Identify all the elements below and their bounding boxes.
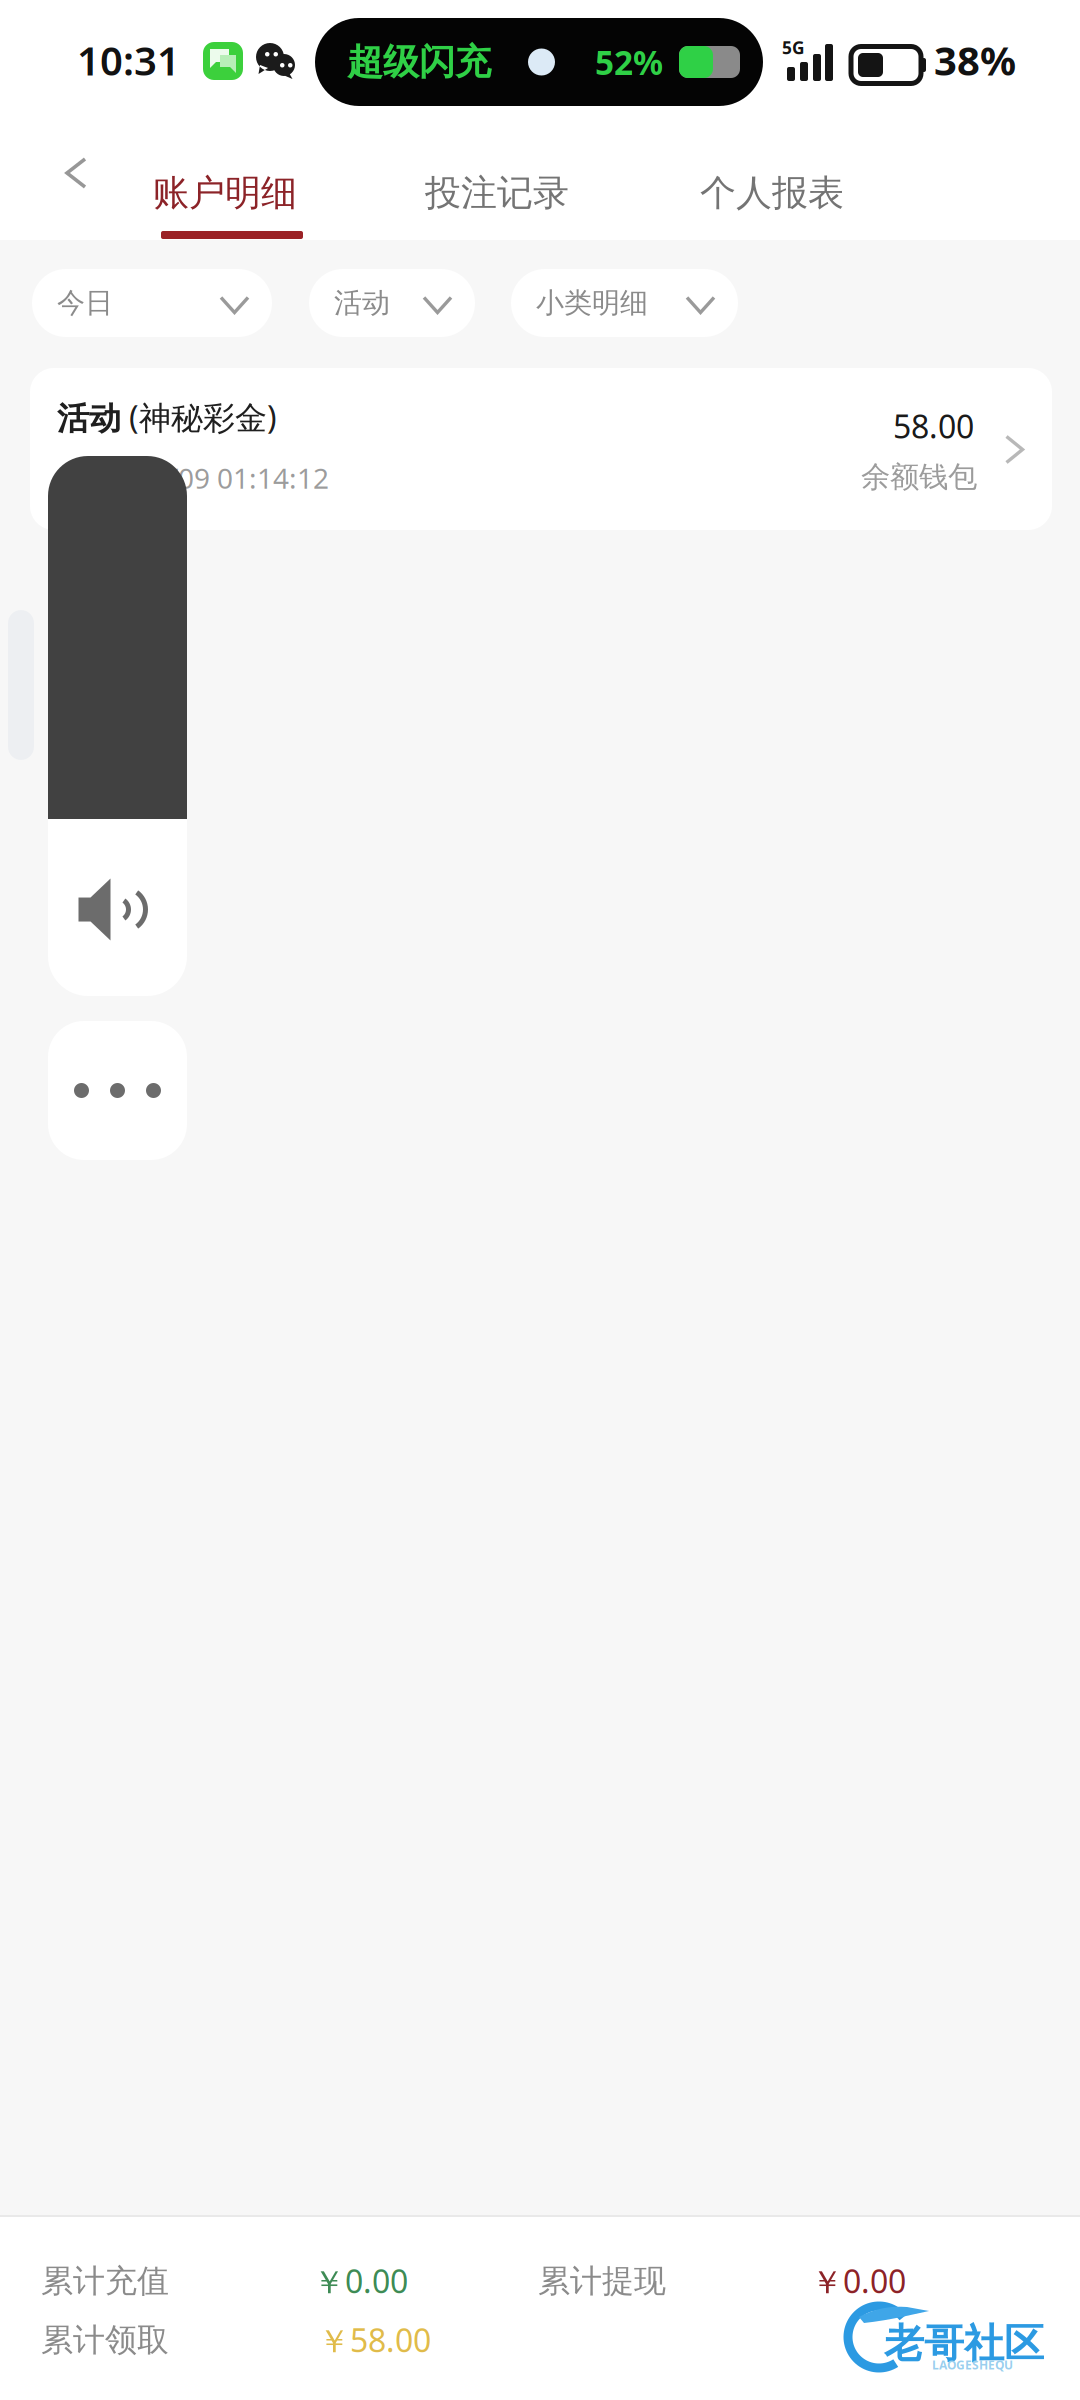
staticText: 余额钱包 — [861, 459, 977, 495]
staticText: 累计充值 — [41, 2261, 169, 2301]
staticText: ￥0.00 — [313, 2260, 408, 2302]
button[interactable]: 个人报表 — [680, 147, 864, 239]
staticText: 活动 — [334, 286, 390, 320]
staticText: 10:31 — [77, 33, 180, 86]
staticText: 58.00 — [893, 405, 974, 447]
button[interactable]: 活动 — [309, 269, 475, 337]
button[interactable]: 投注记录 — [405, 147, 589, 239]
staticText: 个人报表 — [700, 171, 844, 215]
staticText: 投注记录 — [425, 171, 569, 215]
button[interactable]: Volume — [48, 456, 187, 996]
staticText: 活动 — [57, 399, 121, 438]
button[interactable]: More — [48, 1021, 187, 1160]
staticText: 超级闪充 — [347, 40, 491, 84]
staticText: ￥0.00 — [811, 2260, 906, 2302]
staticText: 今日 — [57, 286, 113, 320]
button[interactable]: Back — [30, 127, 122, 219]
staticText: 小类明细 — [536, 286, 648, 320]
button[interactable]: 今日 — [32, 269, 272, 337]
button[interactable]: 账户明细 — [133, 147, 317, 239]
button[interactable]: 小类明细 — [511, 269, 738, 337]
staticText: 累计提现 — [538, 2261, 666, 2301]
staticText: 老哥社区 — [884, 2319, 1044, 2368]
staticText: LAOGESHEQU — [932, 2357, 1013, 2373]
staticText: 累计领取 — [41, 2320, 169, 2360]
staticText: 2026/01/09 01:14:12 — [62, 459, 329, 497]
staticText: (神秘彩金) — [121, 396, 277, 438]
staticText: 账户明细 — [153, 171, 297, 215]
staticText: ￥58.00 — [318, 2319, 431, 2361]
staticText: 38% — [934, 33, 1016, 86]
staticText: 52% — [595, 40, 663, 84]
button[interactable]: 活动 — [0, 0, 1080, 2400]
staticText: 5G — [782, 36, 805, 59]
